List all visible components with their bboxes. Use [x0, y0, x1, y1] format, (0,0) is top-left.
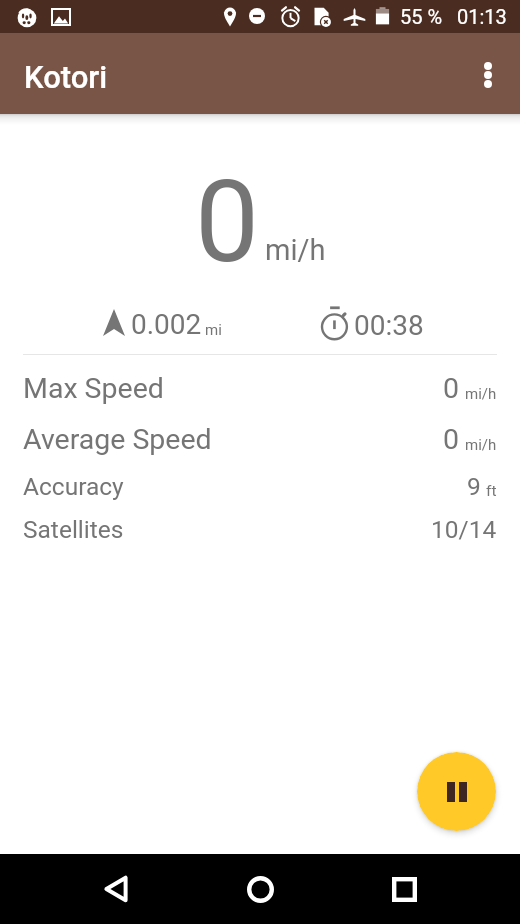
button[interactable]: Back: [74, 854, 158, 924]
button[interactable]: More options: [464, 51, 512, 99]
staticText: mi: [205, 321, 222, 339]
staticText: 00:38: [354, 309, 424, 342]
staticText: mi/h: [465, 385, 497, 403]
staticText: 0: [443, 372, 460, 405]
staticText: 0: [443, 423, 460, 456]
staticText: 01:13: [457, 5, 507, 28]
staticText: 9: [467, 472, 481, 501]
button[interactable]: Recents: [362, 854, 446, 924]
staticText: Satellites: [23, 515, 124, 544]
button[interactable]: Satellites: [0, 508, 520, 551]
button[interactable]: Pause: [417, 752, 496, 831]
staticText: 0.002: [131, 308, 202, 341]
staticText: mi/h: [265, 233, 326, 267]
staticText: Kotori: [24, 59, 108, 95]
staticText: 0: [195, 155, 260, 289]
staticText: ft: [486, 482, 497, 500]
staticText: 10/14: [431, 515, 497, 544]
staticText: Accuracy: [23, 472, 124, 501]
staticText: mi/h: [465, 436, 497, 454]
button[interactable]: Accuracy: [0, 465, 520, 508]
button[interactable]: Average Speed: [0, 416, 520, 463]
staticText: Average Speed: [23, 423, 212, 456]
staticText: 55 %: [400, 5, 443, 28]
button[interactable]: Max Speed: [0, 365, 520, 412]
button[interactable]: Home: [218, 854, 302, 924]
staticText: Max Speed: [23, 372, 164, 405]
